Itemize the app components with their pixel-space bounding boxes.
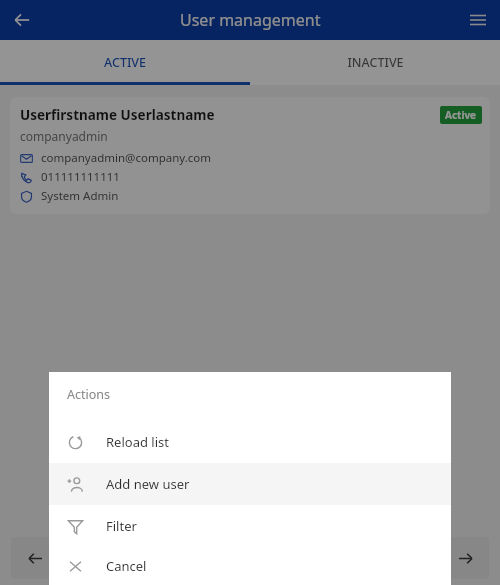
staticText: Active [445,108,477,122]
button[interactable]: Filter [49,505,451,547]
staticText: Add new user [106,475,190,493]
button[interactable]: INACTIVE [250,40,500,85]
button[interactable]: Add new user [49,463,451,505]
button[interactable]: Cancel [49,547,451,585]
staticText: companyadmin@company.com [41,150,211,166]
button[interactable]: Reload list [49,421,451,463]
staticText: ACTIVE [104,54,146,71]
staticText: System Admin [41,188,119,204]
button[interactable]: Userfirstname Userlastname [10,97,490,214]
button[interactable]: Back [11,537,59,579]
staticText: INACTIVE [347,54,404,71]
button[interactable]: Menu [462,4,494,36]
staticText: Filter [106,517,137,535]
staticText: Reload list [106,433,169,451]
staticText: companyadmin [20,128,108,144]
button[interactable]: ACTIVE [0,40,250,85]
button[interactable]: Back [6,4,38,36]
button[interactable]: Forward [441,537,489,579]
staticText: Userfirstname Userlastname [20,106,215,124]
staticText: Cancel [106,557,147,575]
staticText: User management [180,9,321,31]
staticText: Actions [67,386,111,403]
staticText: 011111111111 [41,169,120,185]
